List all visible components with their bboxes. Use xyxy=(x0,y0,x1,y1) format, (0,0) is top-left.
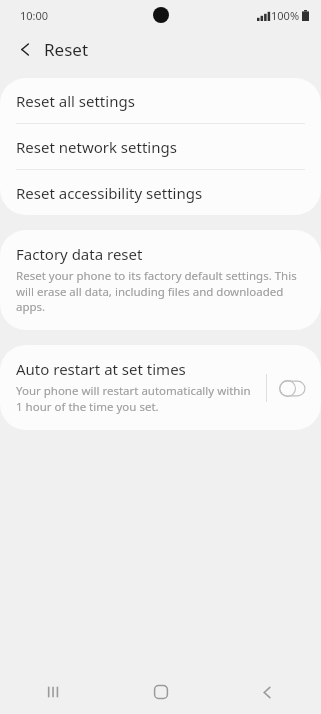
staticText: Reset accessibility settings xyxy=(16,183,203,203)
staticText: 100% xyxy=(271,8,300,23)
button[interactable]: Reset accessibility settings xyxy=(0,170,321,215)
staticText: Reset your phone to its factory default … xyxy=(16,268,305,314)
button[interactable]: Reset network settings xyxy=(0,124,321,169)
button[interactable]: Reset all settings xyxy=(0,78,321,123)
button[interactable]: Home xyxy=(107,670,214,714)
button[interactable]: Auto restart at set times xyxy=(0,345,266,430)
staticText: Factory data reset xyxy=(16,244,143,264)
staticText: Reset all settings xyxy=(16,91,135,111)
button[interactable]: Auto restart at set times toggle xyxy=(275,371,309,405)
staticText: Reset xyxy=(44,38,89,61)
button[interactable]: Back xyxy=(8,32,42,66)
button[interactable]: Back xyxy=(214,670,321,714)
staticText: Reset network settings xyxy=(16,137,177,157)
button[interactable]: Recents xyxy=(0,670,107,714)
button[interactable]: Factory data reset xyxy=(0,230,321,330)
staticText: Auto restart at set times xyxy=(16,359,186,379)
staticText: 10:00 xyxy=(20,8,49,23)
staticText: Your phone will restart automatically wi… xyxy=(16,383,258,414)
